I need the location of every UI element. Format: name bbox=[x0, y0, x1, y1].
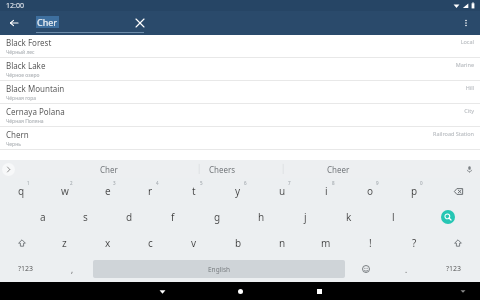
staticText: ! bbox=[369, 236, 372, 250]
staticText: Cheers bbox=[209, 164, 236, 175]
staticText: i bbox=[325, 184, 328, 198]
staticText: ?123 bbox=[446, 264, 462, 274]
button[interactable]: r bbox=[129, 178, 172, 204]
button[interactable]: Black Mountain bbox=[0, 81, 480, 104]
staticText: a bbox=[40, 210, 46, 224]
staticText: 12:00 bbox=[6, 1, 24, 11]
button[interactable]: w bbox=[43, 178, 86, 204]
button[interactable]: Hide keyboard bbox=[456, 284, 470, 298]
staticText: q bbox=[18, 184, 25, 198]
button[interactable]: Chern bbox=[0, 127, 480, 150]
button[interactable]: Black Forest bbox=[0, 35, 480, 58]
staticText: 1 bbox=[27, 180, 30, 186]
button[interactable]: z bbox=[43, 230, 86, 256]
staticText: m bbox=[321, 236, 331, 250]
button[interactable]: Black Lake bbox=[0, 58, 480, 81]
button[interactable]: Voice input bbox=[462, 162, 476, 176]
staticText: t bbox=[192, 184, 196, 198]
button[interactable]: j bbox=[283, 204, 327, 230]
staticText: Чёрное озеро bbox=[6, 72, 40, 79]
button[interactable]: q bbox=[0, 178, 43, 204]
staticText: 3 bbox=[113, 180, 116, 186]
button[interactable]: Clear query bbox=[130, 13, 150, 33]
button[interactable]: , bbox=[52, 256, 93, 282]
staticText: x bbox=[105, 236, 111, 250]
button[interactable]: a bbox=[21, 204, 64, 230]
button[interactable]: t bbox=[172, 178, 216, 204]
staticText: p bbox=[411, 184, 418, 198]
staticText: Local bbox=[460, 38, 474, 45]
button[interactable]: c bbox=[129, 230, 172, 256]
staticText: u bbox=[279, 184, 286, 198]
button[interactable]: s bbox=[64, 204, 107, 230]
staticText: o bbox=[367, 184, 374, 198]
button[interactable]: x bbox=[86, 230, 129, 256]
button[interactable]: e bbox=[86, 178, 129, 204]
button[interactable]: Shift bbox=[436, 230, 480, 256]
staticText: City bbox=[464, 107, 474, 114]
staticText: Cher bbox=[37, 16, 58, 28]
button[interactable]: y bbox=[216, 178, 260, 204]
staticText: Cheer bbox=[327, 164, 350, 175]
button[interactable]: Backspace bbox=[436, 178, 480, 204]
button[interactable]: Cheers bbox=[209, 160, 236, 178]
button[interactable]: d bbox=[107, 204, 151, 230]
button[interactable]: Emoji bbox=[345, 256, 386, 282]
button[interactable]: Back bbox=[154, 283, 170, 299]
staticText: English bbox=[208, 265, 231, 274]
button[interactable]: ?123 bbox=[0, 256, 52, 282]
staticText: 8 bbox=[332, 180, 335, 186]
button[interactable]: Back bbox=[4, 13, 24, 33]
staticText: l bbox=[392, 210, 395, 224]
button[interactable]: b bbox=[216, 230, 260, 256]
button[interactable]: Search bbox=[441, 210, 455, 224]
button[interactable]: More options bbox=[456, 13, 476, 33]
button[interactable]: English bbox=[93, 260, 345, 278]
staticText: 6 bbox=[244, 180, 247, 186]
button[interactable]: ! bbox=[348, 230, 392, 256]
staticText: v bbox=[191, 236, 197, 250]
staticText: 4 bbox=[156, 180, 159, 186]
staticText: 7 bbox=[288, 180, 291, 186]
button[interactable]: ? bbox=[392, 230, 436, 256]
button[interactable]: Expand suggestions bbox=[2, 163, 15, 176]
staticText: k bbox=[346, 210, 352, 224]
staticText: 0 bbox=[420, 180, 423, 186]
staticText: . bbox=[405, 264, 408, 275]
button[interactable]: i bbox=[304, 178, 348, 204]
button[interactable]: Recents bbox=[311, 283, 327, 299]
staticText: Marine bbox=[455, 61, 474, 68]
button[interactable]: m bbox=[304, 230, 348, 256]
button[interactable]: o bbox=[348, 178, 392, 204]
button[interactable]: Cher bbox=[100, 160, 118, 178]
staticText: g bbox=[214, 210, 221, 224]
button[interactable]: k bbox=[327, 204, 371, 230]
button[interactable]: n bbox=[260, 230, 304, 256]
staticText: j bbox=[304, 210, 307, 224]
button[interactable]: Cernaya Polana bbox=[0, 104, 480, 127]
button[interactable]: p bbox=[392, 178, 436, 204]
button[interactable]: f bbox=[151, 204, 195, 230]
staticText: Black Mountain bbox=[6, 83, 65, 94]
staticText: z bbox=[62, 236, 67, 250]
button[interactable]: h bbox=[239, 204, 283, 230]
button[interactable]: u bbox=[260, 178, 304, 204]
staticText: Чёрная гора bbox=[6, 95, 37, 102]
button[interactable]: Cher bbox=[36, 13, 144, 33]
staticText: ?123 bbox=[18, 264, 34, 274]
button[interactable]: l bbox=[371, 204, 415, 230]
staticText: , bbox=[71, 264, 74, 275]
button[interactable]: Shift bbox=[0, 230, 43, 256]
button[interactable]: Cheer bbox=[327, 160, 350, 178]
staticText: n bbox=[279, 236, 286, 250]
button[interactable]: ?123 bbox=[427, 256, 480, 282]
staticText: c bbox=[148, 236, 153, 250]
button[interactable]: g bbox=[195, 204, 239, 230]
staticText: d bbox=[126, 210, 133, 224]
staticText: 5 bbox=[200, 180, 203, 186]
staticText: w bbox=[61, 184, 69, 198]
button[interactable]: Home bbox=[232, 283, 248, 299]
staticText: h bbox=[258, 210, 265, 224]
button[interactable]: v bbox=[172, 230, 216, 256]
